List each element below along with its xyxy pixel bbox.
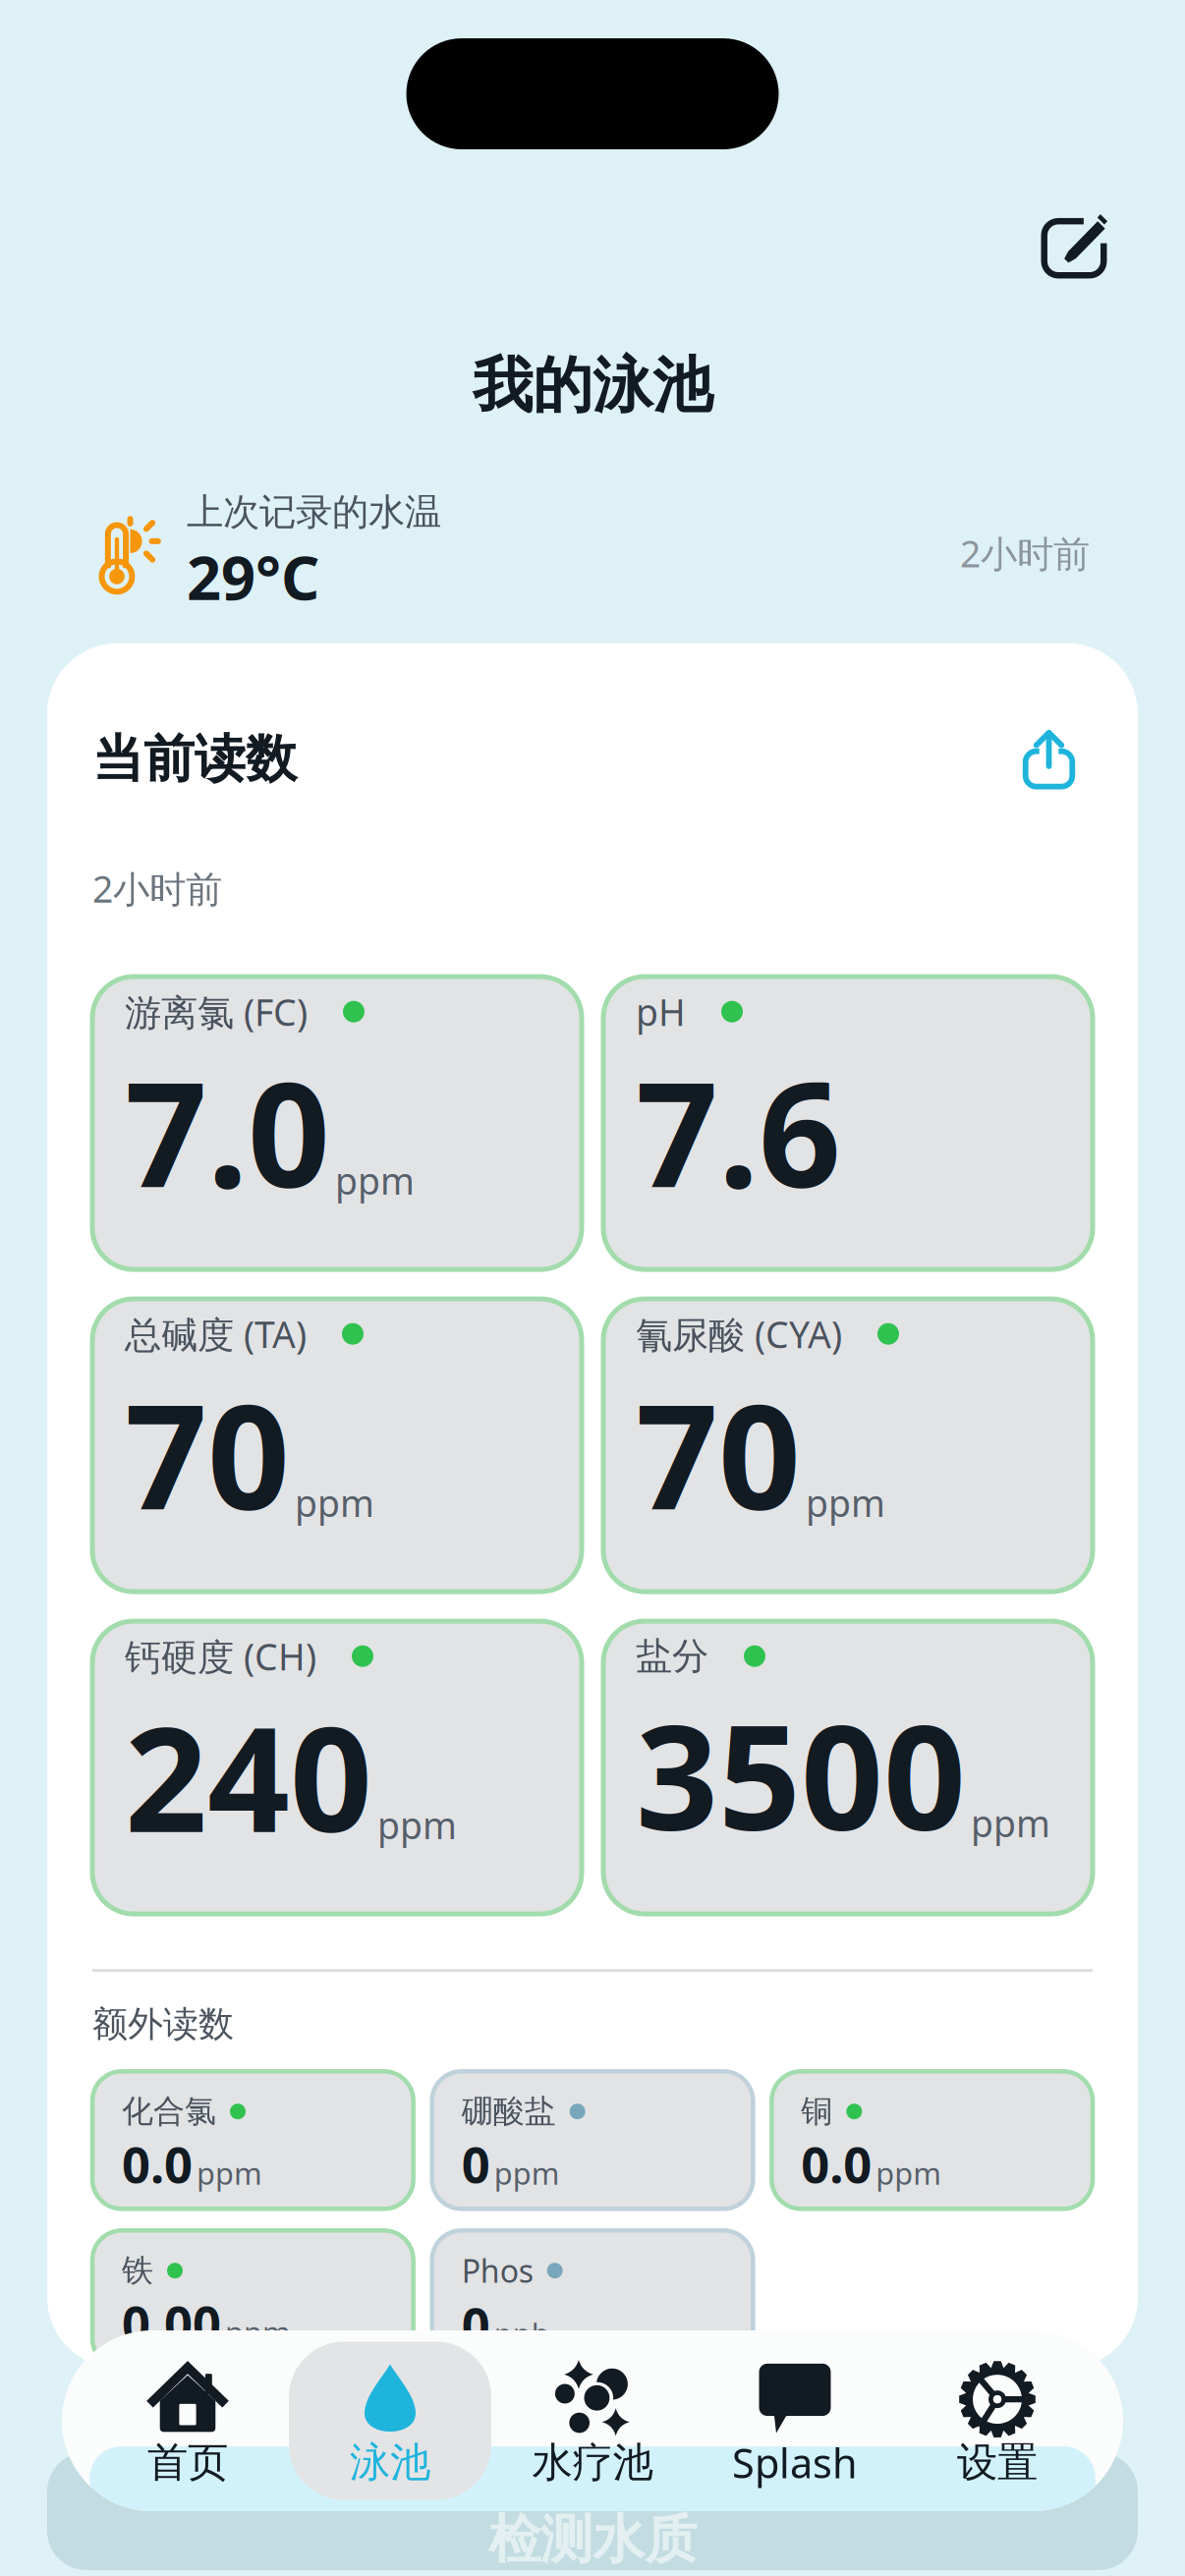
staticText: 水疗池 — [532, 2438, 653, 2487]
staticText: 7.6 — [636, 1036, 841, 1227]
button[interactable]: Edit — [1023, 195, 1125, 297]
button[interactable]: 水疗池 — [491, 2342, 694, 2500]
staticText: ppm — [971, 1799, 1050, 1847]
staticText: 首页 — [147, 2438, 228, 2487]
staticText: Splash — [732, 2436, 858, 2490]
staticText: 3500 — [636, 1679, 966, 1870]
staticText: 泳池 — [350, 2438, 430, 2487]
staticText: 0 — [462, 2291, 490, 2358]
staticText: 上次记录的水温 — [187, 490, 441, 535]
staticText: ppm — [494, 2153, 560, 2193]
staticText: 0.0 — [801, 2131, 872, 2197]
staticText: 29°C — [187, 537, 319, 617]
staticText: 我的泳池 — [473, 349, 712, 423]
staticText: 硼酸盐 — [462, 2092, 556, 2131]
staticText: ppm — [225, 2312, 291, 2352]
staticText: Phos — [462, 2250, 533, 2291]
staticText: 设置 — [957, 2438, 1038, 2487]
staticText: 额外读数 — [92, 2002, 234, 2046]
staticText: ppb — [494, 2314, 550, 2354]
staticText: 总碱度 (TA) — [125, 1310, 307, 1358]
staticText: 7.0 — [125, 1036, 330, 1227]
staticText: ppm — [806, 1478, 885, 1527]
button[interactable]: 泳池 — [289, 2342, 491, 2500]
button[interactable]: Splash — [694, 2342, 896, 2500]
staticText: 游离氯 (FC) — [125, 987, 308, 1036]
staticText: pH — [636, 987, 686, 1036]
staticText: 铁 — [122, 2251, 153, 2290]
staticText: 氰尿酸 (CYA) — [636, 1310, 842, 1358]
staticText: 化合氯 — [122, 2092, 216, 2131]
staticText: ppm — [377, 1801, 457, 1849]
staticText: 0.00 — [122, 2290, 221, 2356]
staticText: 当前读数 — [92, 728, 297, 790]
staticText: 240 — [125, 1680, 372, 1872]
staticText: 盐分 — [636, 1634, 708, 1679]
button[interactable]: 设置 — [896, 2342, 1099, 2500]
staticText: 70 — [636, 1358, 801, 1550]
staticText: 检测水质 — [488, 2507, 697, 2572]
staticText: 70 — [125, 1358, 290, 1550]
staticText: 0 — [462, 2131, 490, 2197]
staticText: 2小时前 — [92, 864, 222, 913]
staticText: 钙硬度 (CH) — [125, 1632, 316, 1680]
staticText: ppm — [335, 1156, 415, 1205]
button[interactable]: 检测水质 — [47, 2452, 1138, 2570]
staticText: ppm — [876, 2153, 942, 2193]
staticText: 2小时前 — [960, 529, 1090, 577]
staticText: 0.0 — [122, 2131, 193, 2197]
button[interactable]: 首页 — [86, 2342, 289, 2500]
button[interactable]: Share — [1019, 729, 1093, 789]
staticText: ppm — [295, 1478, 374, 1527]
staticText: ppm — [197, 2153, 262, 2193]
staticText: 铜 — [801, 2092, 833, 2131]
